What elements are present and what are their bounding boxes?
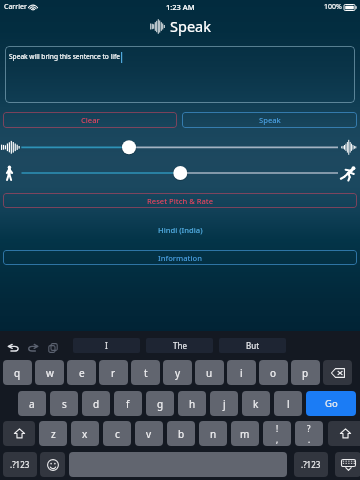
staticText: e [79,366,85,380]
button[interactable]: s [50,391,78,416]
button[interactable]: I [73,338,140,353]
button[interactable]: Redo [23,338,43,358]
button[interactable]: u [195,360,224,385]
staticText: d [93,397,100,411]
button[interactable]: But [219,338,286,353]
staticText: c [115,427,120,441]
staticText: .?123 [10,459,30,470]
button[interactable]: g [146,391,174,416]
button[interactable]: p [291,360,320,385]
button[interactable] [0,136,360,159]
staticText: Clear [81,115,100,125]
button[interactable]: l [274,391,302,416]
staticText: y [175,366,181,380]
button[interactable]: r [99,360,128,385]
staticText: .?123 [301,459,321,470]
staticText: Speak will bring this sentence to life [9,52,120,61]
button[interactable]: Shift [328,421,360,446]
button[interactable]: n [199,421,227,446]
staticText: r [111,366,116,380]
button[interactable]: Clear [3,112,177,128]
button[interactable]: ? [295,421,323,446]
staticText: l [287,397,290,411]
button[interactable]: w [35,360,64,385]
staticText: s [62,397,67,411]
staticText: k [253,397,259,411]
button[interactable]: Speak will bring this sentence to life [5,46,355,103]
staticText: q [14,366,21,380]
staticText: t [144,366,148,380]
staticText: ! [276,423,279,434]
staticText: a [29,397,35,411]
staticText: b [178,427,185,441]
staticText: Hindi (India) [158,225,203,235]
button[interactable]: Space [69,452,287,477]
button[interactable]: Speak [182,112,357,128]
button[interactable]: v [135,421,163,446]
staticText: o [270,366,277,380]
staticText: m [240,427,250,441]
button[interactable]: e [67,360,96,385]
button[interactable]: Emoji [40,452,65,477]
button[interactable]: Information [3,250,357,265]
button[interactable]: a [18,391,46,416]
staticText: 1:23 AM [166,2,195,12]
staticText: Speak [259,115,281,125]
button[interactable]: h [178,391,206,416]
staticText: j [223,397,226,411]
button[interactable]: d [82,391,110,416]
button[interactable]: f [114,391,142,416]
button[interactable]: .?123 [294,452,328,477]
button[interactable]: y [163,360,192,385]
button[interactable]: .?123 [3,452,37,477]
staticText: f [126,397,130,411]
staticText: Speak [170,16,211,36]
button[interactable]: The [146,338,213,353]
button[interactable]: Reset Pitch & Rate [3,193,357,208]
staticText: 100% [324,2,342,12]
staticText: ? [307,423,311,434]
button[interactable] [0,161,360,184]
staticText: z [51,427,56,441]
button[interactable]: k [242,391,270,416]
staticText: Carrier [4,2,27,12]
staticText: p [302,366,309,380]
button[interactable]: t [131,360,160,385]
button[interactable]: x [71,421,99,446]
button[interactable]: i [227,360,256,385]
button[interactable]: Backspace [323,360,352,385]
staticText: , [276,434,279,445]
button[interactable]: Hide keyboard [335,452,360,477]
staticText: w [46,366,54,380]
button[interactable]: Hindi (India) [0,222,360,238]
button[interactable]: z [39,421,67,446]
button[interactable]: c [103,421,131,446]
staticText: n [210,427,217,441]
staticText: v [146,427,152,441]
button[interactable]: ! [263,421,291,446]
button[interactable]: Go [306,391,356,416]
staticText: I [105,340,108,351]
button[interactable]: o [259,360,288,385]
staticText: h [189,397,196,411]
staticText: g [157,397,164,411]
button[interactable]: q [3,360,32,385]
staticText: i [240,366,243,380]
button[interactable]: Paste [43,338,63,358]
button[interactable]: Undo [3,338,23,358]
button[interactable]: Shift [3,421,35,446]
staticText: Go [325,397,338,410]
staticText: The [173,340,187,351]
staticText: But [246,340,260,351]
staticText: u [206,366,213,380]
button[interactable]: b [167,421,195,446]
staticText: Information [158,253,202,263]
button[interactable]: j [210,391,238,416]
staticText: . [308,434,311,445]
staticText: Reset Pitch & Rate [147,196,214,206]
button[interactable]: m [231,421,259,446]
staticText: x [82,427,88,441]
